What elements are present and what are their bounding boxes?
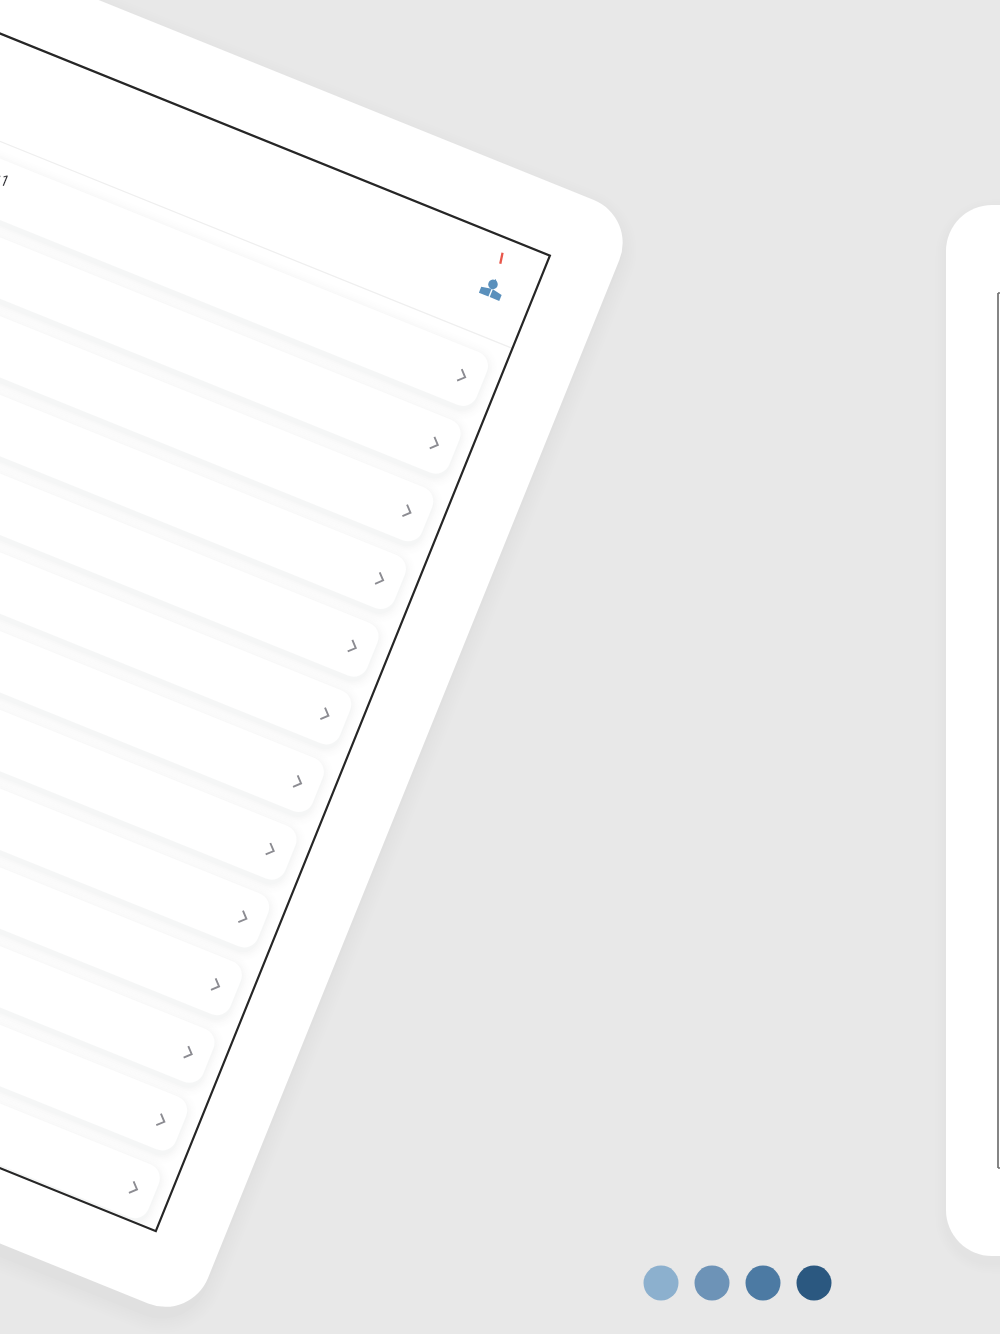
button[interactable]: Bible chapter list, tablet preview — [0, 0, 1000, 1334]
